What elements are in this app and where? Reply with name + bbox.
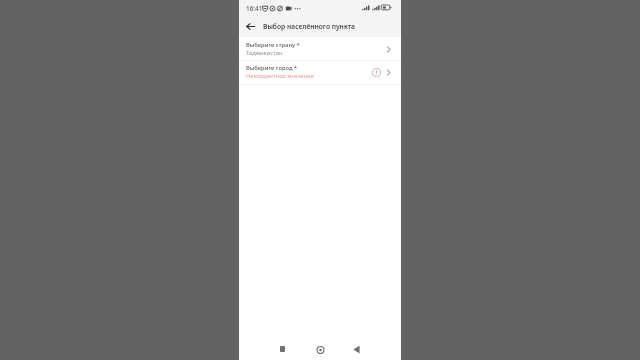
staticText: Выберите город * xyxy=(246,64,298,72)
button[interactable]: Выберите город * xyxy=(239,60,401,83)
staticText: Некорректное значение xyxy=(246,72,314,80)
staticText: 16:41 xyxy=(246,4,263,13)
staticText: Выбор населённого пункта xyxy=(263,22,355,31)
button[interactable]: Back xyxy=(239,16,261,37)
staticText: Таджикистан xyxy=(246,49,283,57)
staticText: Выберите страну * xyxy=(246,41,300,49)
button[interactable]: Home xyxy=(308,338,332,360)
button[interactable]: Recent apps xyxy=(270,337,294,360)
button[interactable]: Back xyxy=(344,337,368,360)
button[interactable]: Выберите страну * xyxy=(239,37,401,60)
